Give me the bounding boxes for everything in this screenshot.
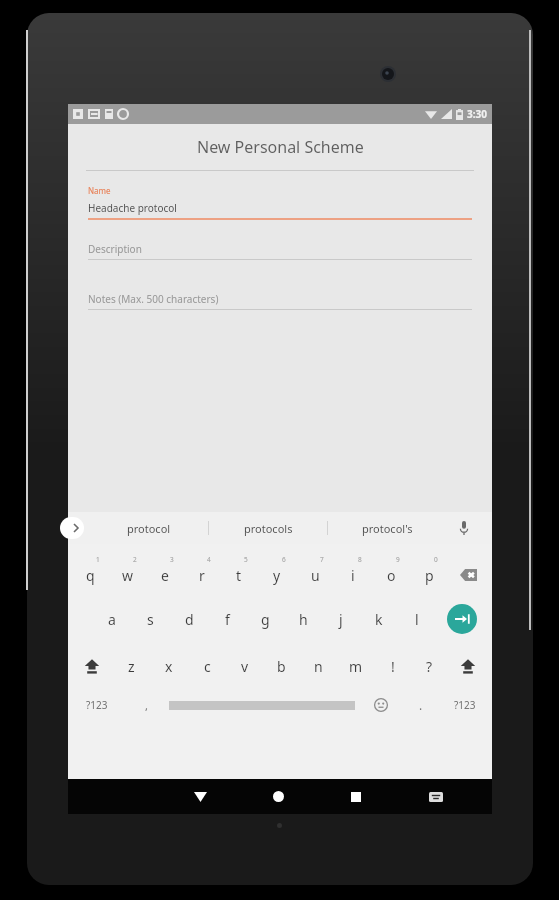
staticText: e bbox=[161, 566, 169, 585]
staticText: Description bbox=[88, 242, 142, 256]
staticText: 5 bbox=[244, 555, 248, 564]
staticText: v bbox=[241, 657, 249, 676]
staticText: ?123 bbox=[454, 698, 476, 712]
button[interactable]: 2 bbox=[109, 554, 146, 590]
button[interactable]: l bbox=[398, 600, 436, 638]
staticText: ? bbox=[426, 657, 433, 676]
button[interactable]: Shift bbox=[448, 650, 488, 682]
staticText: 2 bbox=[133, 555, 137, 564]
button[interactable]: 6 bbox=[258, 554, 296, 590]
staticText: m bbox=[349, 657, 363, 676]
button[interactable]: Expand suggestions bbox=[60, 517, 84, 539]
button[interactable]: c bbox=[188, 650, 226, 682]
staticText: ! bbox=[391, 657, 395, 676]
button[interactable]: Back bbox=[180, 779, 220, 814]
staticText: . bbox=[419, 697, 423, 713]
button[interactable]: h bbox=[284, 600, 322, 638]
staticText: k bbox=[375, 610, 383, 629]
button[interactable]: 0 bbox=[410, 554, 448, 590]
button[interactable]: z bbox=[112, 650, 150, 682]
button[interactable]: 9 bbox=[372, 554, 410, 590]
button[interactable]: protocols bbox=[209, 512, 327, 544]
staticText: 4 bbox=[207, 555, 211, 564]
button[interactable]: Enter bbox=[436, 600, 488, 638]
staticText: r bbox=[199, 566, 205, 585]
staticText: 3 bbox=[170, 555, 174, 564]
button[interactable]: Recent apps bbox=[336, 779, 376, 814]
staticText: 1 bbox=[96, 555, 100, 564]
staticText: protocol bbox=[127, 521, 171, 536]
staticText: s bbox=[147, 610, 154, 629]
button[interactable]: j bbox=[322, 600, 360, 638]
staticText: , bbox=[145, 698, 148, 713]
staticText: New Personal Scheme bbox=[197, 136, 364, 158]
button[interactable]: g bbox=[246, 600, 284, 638]
button[interactable]: 4 bbox=[183, 554, 220, 590]
button[interactable]: b bbox=[263, 650, 300, 682]
staticText: u bbox=[311, 566, 320, 585]
button[interactable]: Voice input bbox=[446, 512, 482, 544]
staticText: 3:30 bbox=[467, 107, 487, 121]
staticText: Notes (Max. 500 characters) bbox=[88, 292, 219, 306]
staticText: o bbox=[387, 566, 396, 585]
button[interactable]: a bbox=[92, 600, 131, 638]
button[interactable]: Space bbox=[169, 690, 355, 720]
staticText: 6 bbox=[282, 555, 286, 564]
staticText: g bbox=[261, 610, 270, 629]
staticText: d bbox=[185, 610, 194, 629]
button[interactable]: , bbox=[126, 690, 166, 720]
staticText: 8 bbox=[358, 555, 362, 564]
staticText: 7 bbox=[320, 555, 324, 564]
button[interactable]: v bbox=[226, 650, 263, 682]
button[interactable]: protocol bbox=[90, 512, 208, 544]
staticText: protocol's bbox=[362, 521, 413, 536]
button[interactable]: n bbox=[300, 650, 337, 682]
button[interactable]: 1 bbox=[72, 554, 109, 590]
staticText: protocols bbox=[244, 521, 293, 536]
button[interactable]: s bbox=[131, 600, 170, 638]
button[interactable]: protocol's bbox=[328, 512, 446, 544]
staticText: n bbox=[314, 657, 323, 676]
button[interactable]: k bbox=[360, 600, 398, 638]
staticText: y bbox=[273, 566, 281, 585]
staticText: a bbox=[108, 610, 116, 629]
button[interactable]: 7 bbox=[296, 554, 334, 590]
button[interactable]: Backspace bbox=[448, 554, 488, 590]
button[interactable]: ? bbox=[411, 650, 448, 682]
staticText: Name bbox=[88, 185, 111, 196]
staticText: t bbox=[236, 566, 242, 585]
staticText: p bbox=[425, 566, 434, 585]
staticText: q bbox=[86, 566, 95, 585]
staticText: f bbox=[225, 610, 230, 629]
staticText: Headache protocol bbox=[88, 201, 177, 215]
staticText: ?123 bbox=[86, 698, 108, 712]
button[interactable]: Description bbox=[88, 242, 472, 260]
button[interactable]: ?123 bbox=[438, 690, 492, 720]
button[interactable]: Shift bbox=[72, 650, 112, 682]
button[interactable]: m bbox=[337, 650, 374, 682]
staticText: h bbox=[299, 610, 308, 629]
button[interactable]: Notes (Max. 500 characters) bbox=[88, 292, 472, 310]
button[interactable]: 5 bbox=[220, 554, 258, 590]
staticText: b bbox=[277, 657, 286, 676]
button[interactable]: 3 bbox=[146, 554, 183, 590]
button[interactable]: d bbox=[170, 600, 208, 638]
button[interactable]: Emoji bbox=[358, 690, 404, 720]
staticText: w bbox=[122, 566, 134, 585]
button[interactable]: Name bbox=[88, 185, 472, 220]
staticText: l bbox=[415, 610, 419, 629]
staticText: x bbox=[165, 657, 173, 676]
button[interactable]: ?123 bbox=[68, 690, 126, 720]
staticText: 9 bbox=[396, 555, 400, 564]
staticText: 0 bbox=[434, 555, 438, 564]
button[interactable]: Home bbox=[258, 779, 298, 814]
button[interactable]: . bbox=[404, 690, 438, 720]
staticText: i bbox=[351, 566, 355, 585]
button[interactable]: ! bbox=[374, 650, 411, 682]
staticText: c bbox=[204, 657, 211, 676]
button[interactable]: f bbox=[208, 600, 246, 638]
button[interactable]: Hide keyboard bbox=[416, 779, 456, 814]
staticText: j bbox=[339, 610, 343, 629]
button[interactable]: 8 bbox=[334, 554, 372, 590]
button[interactable]: x bbox=[150, 650, 188, 682]
